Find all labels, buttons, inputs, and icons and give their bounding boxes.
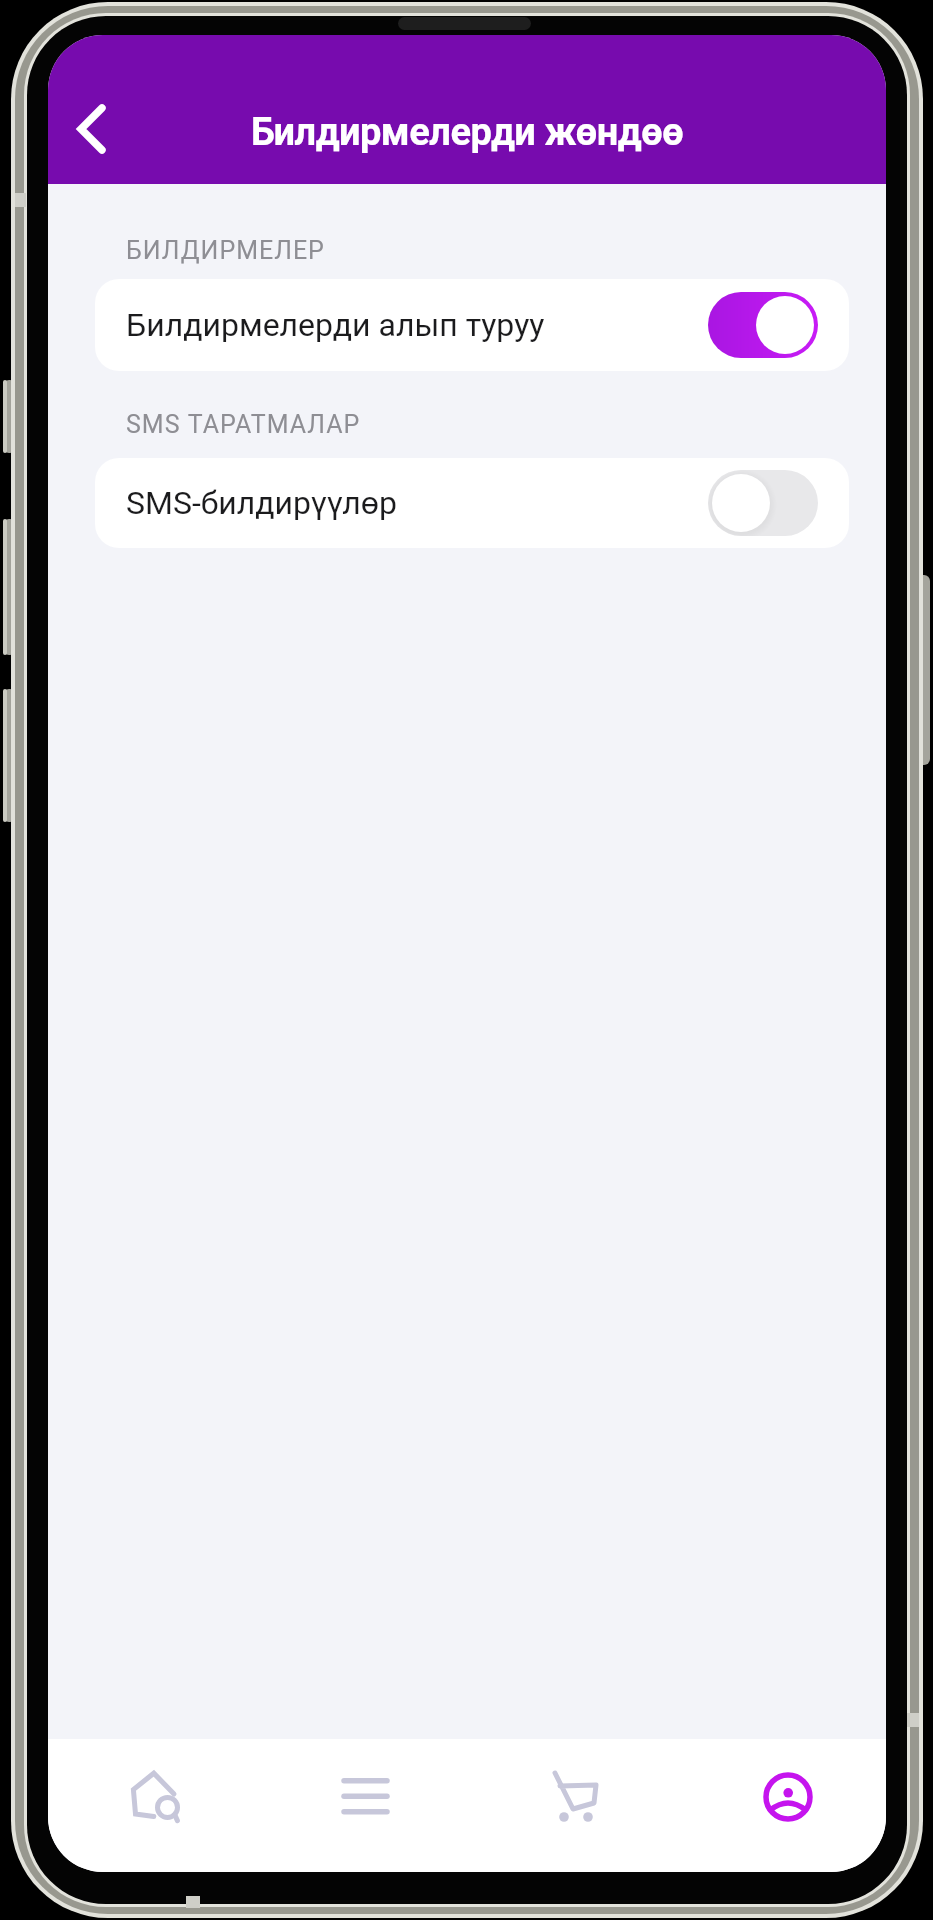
button[interactable]: SMS-билдирүүлөр (95, 458, 849, 548)
button[interactable] (63, 97, 127, 161)
staticText: SMS-билдирүүлөр (126, 484, 397, 522)
staticText: Билдирмелерди алып туруу (126, 306, 545, 344)
button[interactable] (748, 1757, 828, 1837)
button[interactable] (708, 292, 818, 358)
button[interactable] (325, 1757, 405, 1837)
button[interactable]: Билдирмелерди алып туруу (95, 279, 849, 371)
staticText: Билдирмелерди жөндөө (251, 110, 684, 155)
staticText: SMS ТАРАТМАЛАР (126, 410, 361, 439)
button[interactable] (534, 1757, 614, 1837)
button[interactable] (113, 1757, 193, 1837)
button[interactable] (708, 470, 818, 536)
staticText: БИЛДИРМЕЛЕР (126, 236, 325, 265)
